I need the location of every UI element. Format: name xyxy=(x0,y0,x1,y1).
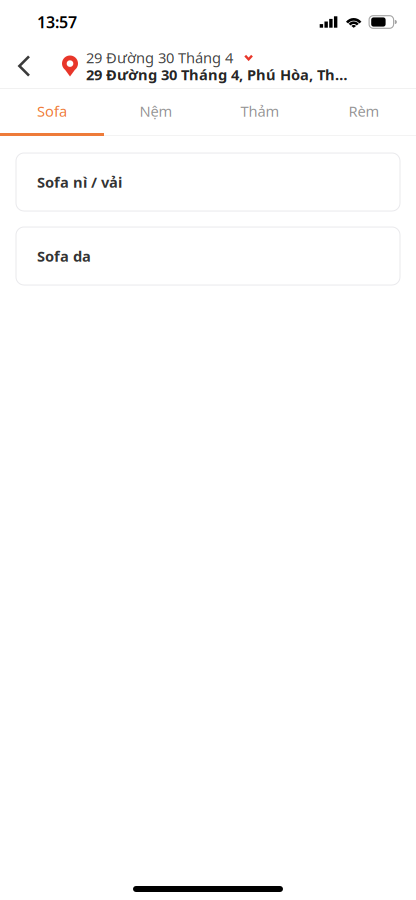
button[interactable]: 29 Đường 30 Tháng 4 xyxy=(62,44,372,88)
button[interactable]: Sofa nì / vải xyxy=(16,153,400,211)
button[interactable]: Thảm xyxy=(208,89,312,133)
staticText: Sofa nì / vải xyxy=(37,172,122,192)
staticText: Sofa da xyxy=(37,246,91,266)
staticText: 29 Đường 30 Tháng 4, Phú Hòa, Th… xyxy=(86,65,348,84)
button[interactable]: Nệm xyxy=(104,89,208,133)
staticText: Rèm xyxy=(348,101,379,121)
staticText: Thảm xyxy=(240,101,279,121)
staticText: 13:57 xyxy=(37,11,77,33)
staticText: Sofa xyxy=(37,101,67,121)
button[interactable]: Sofa xyxy=(0,89,104,133)
button[interactable]: Rèm xyxy=(312,89,416,133)
staticText: Nệm xyxy=(139,101,172,121)
button[interactable]: Back xyxy=(0,44,62,88)
button[interactable]: Sofa da xyxy=(16,227,400,285)
staticText: 29 Đường 30 Tháng 4 xyxy=(86,48,233,67)
